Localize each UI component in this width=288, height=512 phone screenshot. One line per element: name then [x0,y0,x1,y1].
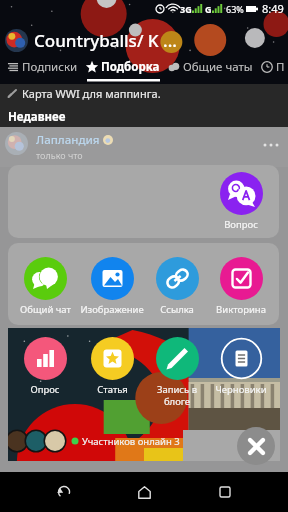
staticText: Countryballs/ K ... [34,29,177,52]
staticText: Запись в блоге [145,383,209,407]
button[interactable]: Вопрос [209,172,273,231]
button[interactable]: Back [47,475,81,509]
staticText: Недавнее [8,109,66,125]
button[interactable]: Черновики [209,337,273,396]
staticText: 8:49 [262,1,284,16]
staticText: Участников онлайн 3 [82,435,180,448]
staticText: Общие чаты [183,59,253,75]
staticText: По [276,59,284,75]
staticText: только что [36,149,83,161]
staticText: Черновики [215,383,267,396]
button[interactable]: Home [127,475,161,509]
staticText: Статья [97,383,128,396]
staticText: Изображение [80,303,144,316]
button[interactable]: Подборка [82,57,164,77]
button[interactable]: Общие чаты [164,57,257,77]
button[interactable]: Recents [208,475,242,509]
button[interactable]: Community avatar [5,29,28,52]
staticText: Вопрос [224,218,258,231]
button[interactable]: Подписки [3,57,82,77]
staticText: Опрос [30,383,60,396]
button[interactable]: Close menu [237,427,275,465]
staticText: 63% [226,3,244,15]
button[interactable]: Изображение [80,257,144,316]
staticText: Карта WWI для маппинга. [22,86,161,101]
button[interactable]: Общий чат [13,257,77,316]
staticText: Подборка [101,59,160,75]
staticText: Ссылка [160,303,194,316]
button[interactable]: Статья [80,337,144,396]
staticText: Общий чат [20,303,71,316]
button[interactable]: More options [261,135,281,155]
button[interactable]: Викторина [209,257,273,316]
button[interactable]: По [257,57,288,77]
staticText: Подписки [22,59,78,75]
button[interactable]: Запись в блоге [145,337,209,407]
button[interactable]: Опрос [13,337,77,396]
staticText: G [205,3,212,15]
staticText: Лапландия [36,132,100,148]
staticText: Викторина [216,303,266,316]
staticText: 3G [180,3,192,15]
button[interactable]: Ссылка [145,257,209,316]
